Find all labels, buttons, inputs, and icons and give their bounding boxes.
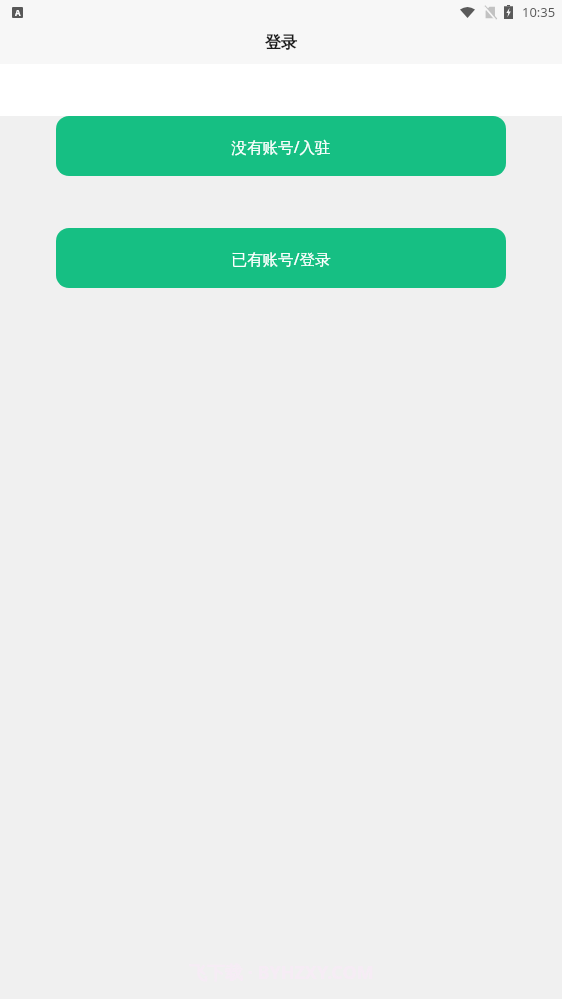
- staticText: 10:35: [522, 3, 556, 21]
- staticText: 没有账号/入驻: [231, 136, 331, 157]
- staticText: 已有账号/登录: [231, 248, 331, 269]
- button[interactable]: 没有账号/入驻: [56, 116, 506, 176]
- other: No SIM card: [483, 6, 496, 19]
- other: Notification: [12, 7, 23, 18]
- other: Battery charging: [504, 5, 513, 19]
- other: Wi-Fi: [460, 6, 475, 18]
- button[interactable]: 已有账号/登录: [56, 228, 506, 288]
- staticText: A: [15, 7, 21, 18]
- staticText: 登录: [265, 33, 297, 53]
